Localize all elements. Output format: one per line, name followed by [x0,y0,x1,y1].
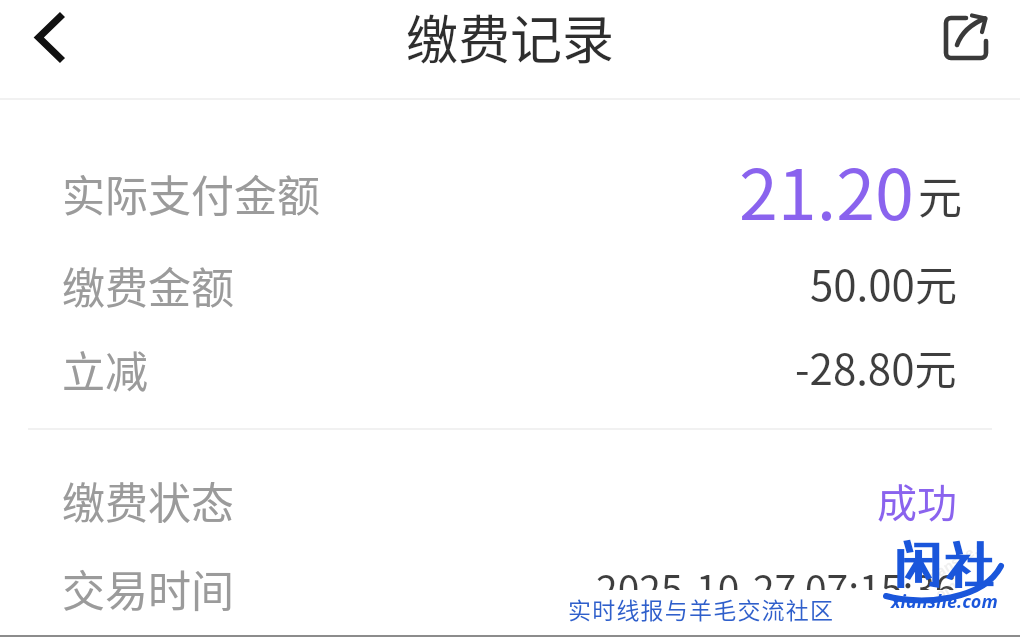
button[interactable]: 交易时间 [0,546,1020,630]
staticText: 实时线报与羊毛交流社区 [568,592,835,625]
staticText: 缴费记录 [406,0,615,74]
staticText: 50.00元 [810,252,957,313]
button[interactable]: 立减 [0,327,1020,411]
button[interactable]: Back [0,0,100,100]
button[interactable]: 缴费状态 [0,458,1020,542]
staticText: 缴费金额 [62,254,234,316]
staticText: 缴费状态 [62,469,234,531]
staticText: xianshe.com [921,532,1004,603]
staticText: 交易时间 [62,557,234,619]
staticText: 元 [918,163,962,227]
button[interactable]: Share [924,0,1020,100]
staticText: 21.20 [739,139,914,225]
staticText: 立减 [62,338,148,400]
staticText: xianshe.com [891,589,998,614]
staticText: 实际支付金额 [62,162,320,224]
staticText: 2025-10-27 07:15:36 [596,559,957,615]
button[interactable]: 缴费金额 [0,243,1020,327]
staticText: 闲社 [892,535,995,595]
staticText: -28.80元 [795,336,957,397]
staticText: 成功 [877,472,957,530]
button[interactable]: 实际支付金额 [0,150,1020,236]
